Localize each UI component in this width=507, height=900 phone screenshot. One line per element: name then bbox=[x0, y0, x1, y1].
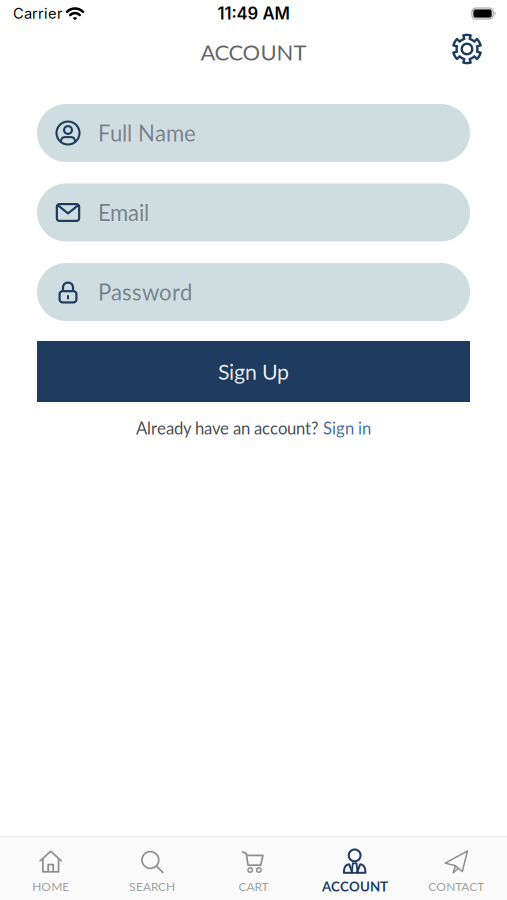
button[interactable]: Full Name bbox=[37, 104, 470, 162]
staticText: HOME bbox=[32, 879, 69, 893]
staticText: Sign Up bbox=[218, 359, 289, 384]
staticText: Email bbox=[98, 199, 149, 226]
staticText: Already have an account? bbox=[136, 418, 318, 438]
button[interactable]: HOME bbox=[0, 848, 101, 894]
button[interactable]: Settings bbox=[451, 33, 482, 64]
staticText: CONTACT bbox=[428, 879, 484, 893]
button[interactable]: Password bbox=[37, 263, 470, 321]
staticText: SEARCH bbox=[129, 879, 175, 893]
staticText: Full Name bbox=[98, 120, 196, 146]
staticText: ACCOUNT bbox=[322, 878, 388, 894]
staticText: Carrier bbox=[13, 5, 63, 22]
staticText: Sign in bbox=[323, 418, 371, 438]
button[interactable]: CONTACT bbox=[406, 848, 507, 894]
staticText: 11:49 AM bbox=[217, 3, 289, 24]
staticText: Password bbox=[98, 279, 192, 305]
button[interactable]: ACCOUNT bbox=[304, 848, 406, 894]
staticText: CART bbox=[238, 879, 268, 893]
button[interactable]: Sign in bbox=[323, 418, 371, 438]
button[interactable]: CART bbox=[203, 848, 304, 894]
button[interactable]: Sign Up bbox=[37, 341, 470, 402]
staticText: ACCOUNT bbox=[200, 39, 306, 65]
button[interactable]: Email bbox=[37, 183, 470, 241]
button[interactable]: SEARCH bbox=[101, 848, 203, 894]
